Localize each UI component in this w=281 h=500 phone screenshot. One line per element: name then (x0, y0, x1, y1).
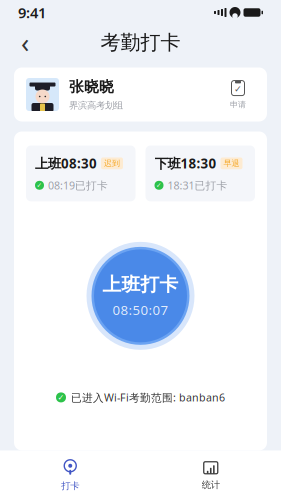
staticText: 08:50:07 (112, 301, 168, 319)
staticText: 界滨高考划组 (69, 100, 123, 111)
staticText: 下班18:30 (154, 154, 216, 172)
staticText: 9:41 (18, 3, 46, 22)
staticText: ✓ (156, 181, 162, 189)
staticText: 打卡 (61, 480, 79, 492)
staticText: ✓ (57, 393, 64, 402)
button[interactable]: 统计 (140, 453, 281, 497)
staticText: 张晓晓 (69, 78, 114, 96)
button[interactable]: Back (8, 25, 42, 59)
button[interactable]: ✓ (221, 77, 255, 111)
staticText: 上班打卡 (102, 273, 178, 296)
staticText: ✓ (234, 84, 242, 94)
staticText: ✓ (36, 181, 42, 189)
staticText: 上班08:30 (35, 154, 97, 172)
button[interactable]: 上班打卡 (84, 240, 196, 352)
staticText: 08:19已打卡 (48, 178, 108, 192)
staticText: 早退 (223, 158, 239, 168)
staticText: ‹ (21, 25, 29, 60)
staticText: 迟到 (104, 158, 120, 168)
staticText: 申请 (230, 100, 246, 109)
staticText: 考勤打卡 (100, 30, 180, 55)
button[interactable]: 打卡 (0, 453, 140, 497)
staticText: 统计 (202, 479, 220, 491)
staticText: 已进入Wi-Fi考勤范围: banban6 (71, 390, 225, 404)
staticText: 18:31已打卡 (167, 178, 227, 192)
